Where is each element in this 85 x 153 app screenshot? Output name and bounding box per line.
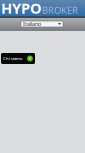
button[interactable]: HYPOBROKER home [0, 0, 85, 16]
staticText: HYPO [1, 0, 42, 18]
staticText: Italiano [23, 20, 41, 28]
staticText: BROKER [42, 4, 78, 16]
button[interactable]: Chi siamo [1, 53, 35, 64]
button[interactable]: Italiano [21, 21, 63, 27]
staticText: Chi siamo [3, 56, 22, 61]
